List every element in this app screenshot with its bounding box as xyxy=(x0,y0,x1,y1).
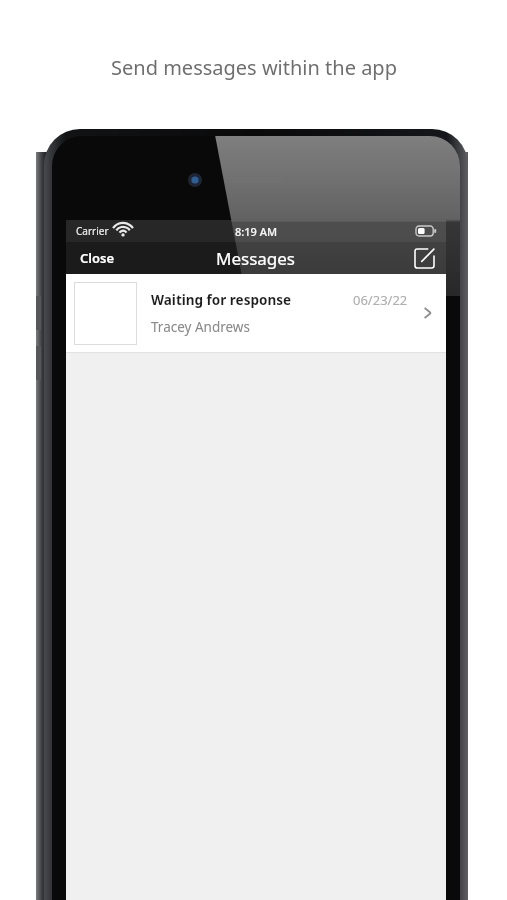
staticText: 8:19 AM xyxy=(235,224,278,239)
button[interactable]: Waiting for response xyxy=(66,274,446,352)
staticText: Tracey Andrews xyxy=(151,318,250,336)
staticText: Send messages within the app xyxy=(111,54,397,81)
staticText: Messages xyxy=(216,247,296,270)
button[interactable]: Compose message xyxy=(403,244,446,273)
staticText: 06/23/22 xyxy=(353,291,408,309)
staticText: Waiting for response xyxy=(151,291,353,309)
staticText: Carrier xyxy=(76,224,109,238)
staticText: Close xyxy=(80,249,115,267)
button[interactable]: Close xyxy=(66,243,129,273)
